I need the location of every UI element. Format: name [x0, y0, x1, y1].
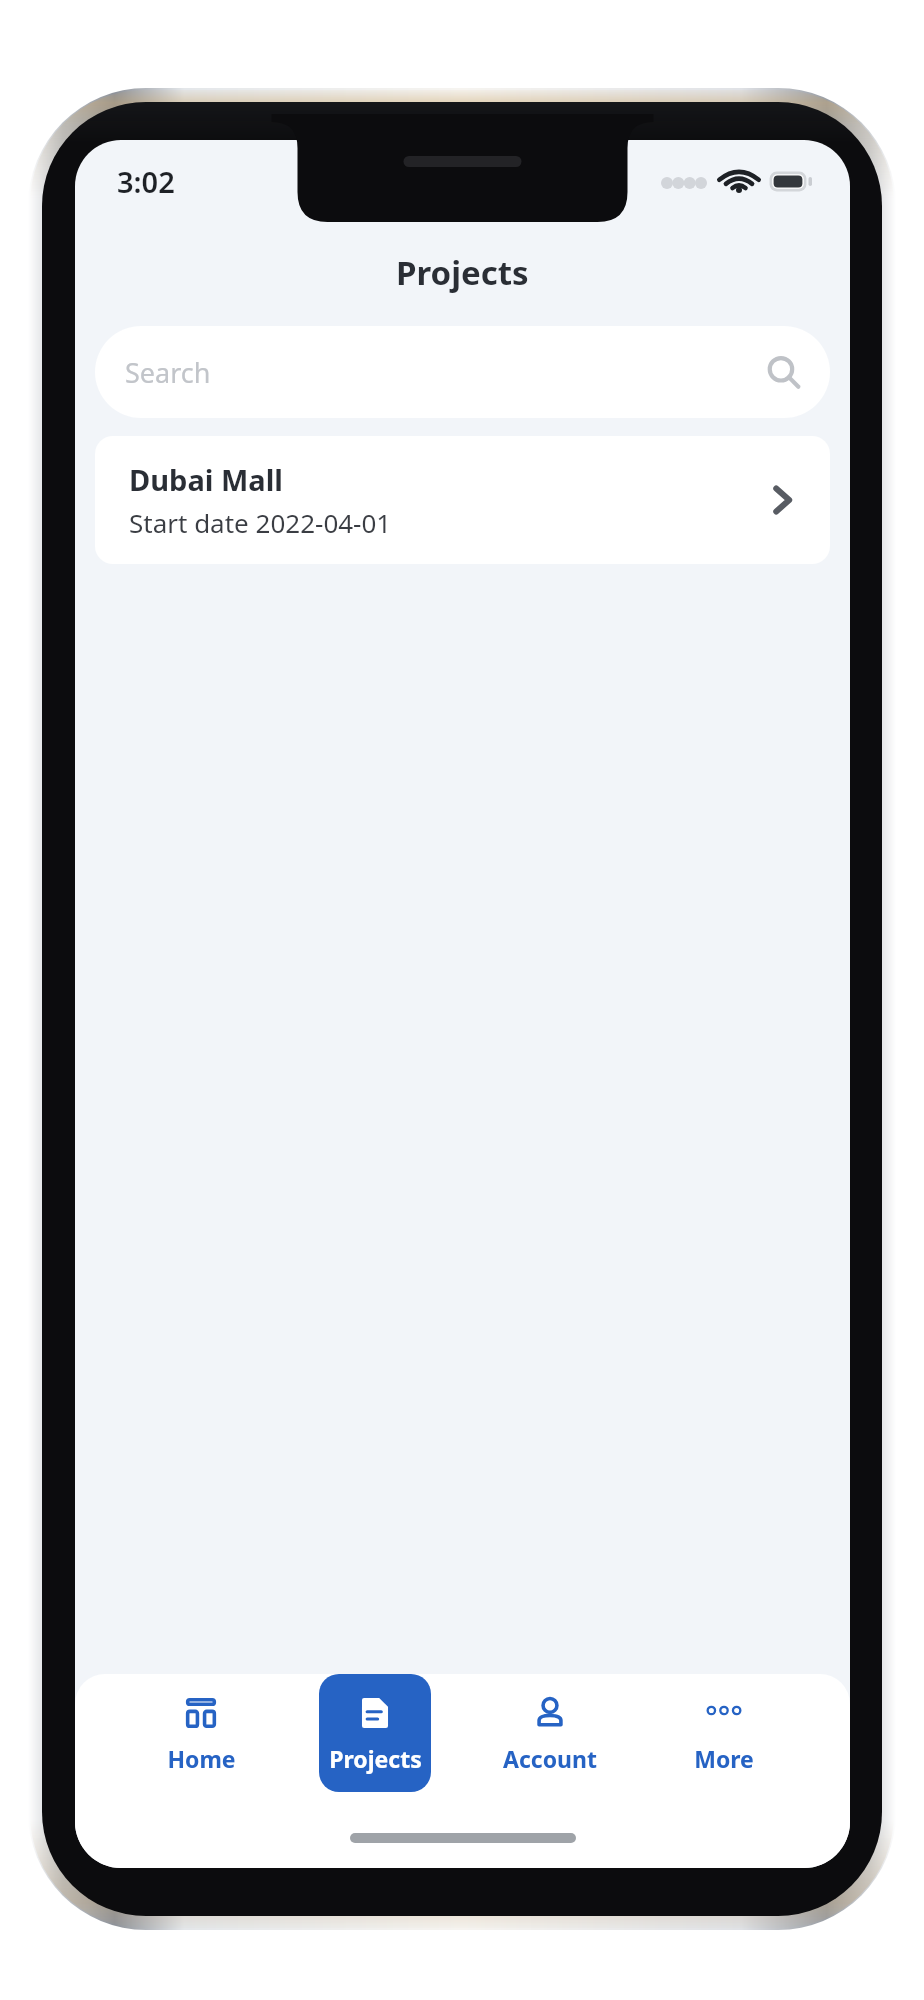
button[interactable]: Home [145, 1674, 257, 1792]
staticText: Home [167, 1743, 236, 1774]
staticText: Search [125, 354, 766, 391]
staticText: Projects [396, 250, 529, 295]
button[interactable]: More [668, 1674, 780, 1792]
button[interactable]: Dubai Mall [95, 436, 830, 564]
staticText: More [694, 1743, 754, 1774]
button[interactable]: Projects [319, 1674, 431, 1792]
staticText: Account [503, 1743, 597, 1774]
staticText: Projects [329, 1743, 422, 1774]
button[interactable]: Account [494, 1674, 606, 1792]
staticText: 3:02 [117, 162, 175, 201]
staticText: Start date 2022-04-01 [129, 505, 392, 540]
staticText: Dubai Mall [129, 460, 283, 499]
button[interactable]: Search [95, 326, 830, 418]
